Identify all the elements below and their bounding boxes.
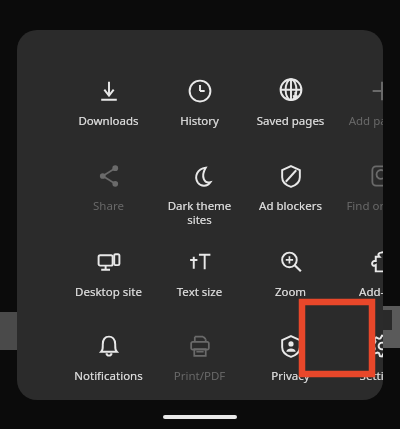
staticText: Settings xyxy=(337,368,383,384)
staticText: Downloads xyxy=(64,113,153,129)
staticText: Text size xyxy=(155,284,244,300)
button[interactable]: Ad blockers xyxy=(245,155,336,229)
button[interactable]: Add page to xyxy=(336,70,383,144)
button[interactable]: Find on page xyxy=(336,155,383,229)
button[interactable]: Print/PDF xyxy=(154,325,245,399)
button[interactable]: Dark theme sites xyxy=(154,155,245,229)
button[interactable]: History xyxy=(154,70,245,144)
button[interactable]: Downloads xyxy=(63,70,154,144)
button[interactable]: Desktop site xyxy=(63,241,154,315)
staticText: Saved pages xyxy=(246,113,335,129)
button[interactable]: Settings xyxy=(336,325,383,399)
staticText: Add-ons xyxy=(337,284,383,300)
staticText: Dark theme sites xyxy=(155,198,244,227)
staticText: Privacy xyxy=(246,368,335,384)
button[interactable]: Saved pages xyxy=(245,70,336,144)
button[interactable]: Text size xyxy=(154,241,245,315)
staticText: History xyxy=(155,113,244,129)
button[interactable]: Share xyxy=(63,155,154,229)
staticText: Find on page xyxy=(337,198,383,214)
staticText: Share xyxy=(64,198,153,214)
staticText: Zoom xyxy=(246,284,335,300)
staticText: Desktop site xyxy=(64,284,153,300)
button[interactable]: Zoom xyxy=(245,241,336,315)
button[interactable]: Add-ons xyxy=(336,241,383,315)
staticText: Notifications xyxy=(64,368,153,384)
staticText: Add page to xyxy=(337,113,383,129)
staticText: Print/PDF xyxy=(155,368,244,384)
button[interactable]: Privacy xyxy=(245,325,336,399)
staticText: Ad blockers xyxy=(246,198,335,214)
button[interactable]: Notifications xyxy=(63,325,154,399)
